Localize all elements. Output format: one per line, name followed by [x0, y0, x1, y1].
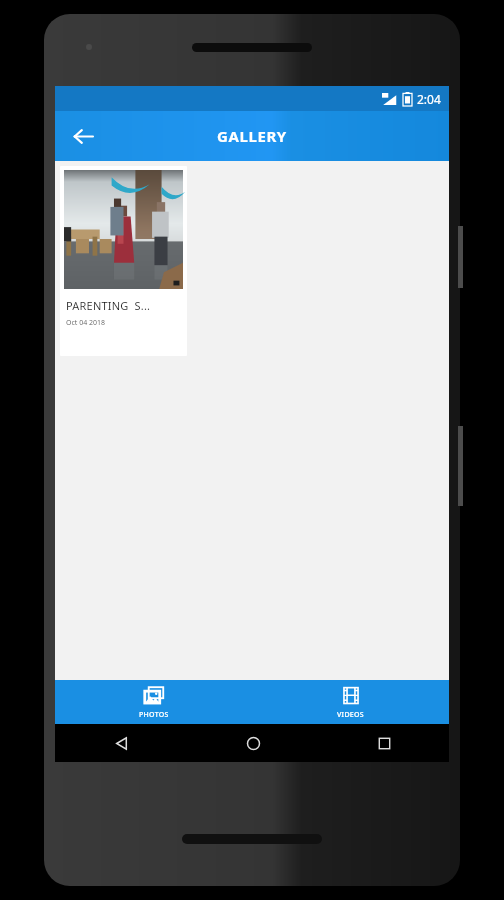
button[interactable]: Home — [236, 726, 270, 760]
button[interactable]: Back — [61, 114, 105, 158]
button[interactable]: VIDEOS — [252, 680, 449, 724]
button[interactable]: PHOTOS — [55, 680, 252, 724]
button[interactable]: Back — [104, 726, 138, 760]
staticText: VIDEOS — [337, 710, 364, 720]
staticText: 2:04 — [417, 91, 441, 107]
button[interactable]: Recents — [367, 726, 401, 760]
staticText: Oct 04 2018 — [66, 318, 106, 328]
staticText: PARENTING S... — [66, 298, 151, 313]
staticText: GALLERY — [217, 126, 287, 146]
staticText: PHOTOS — [139, 710, 169, 720]
button[interactable]: PARENTING S... — [60, 166, 187, 356]
